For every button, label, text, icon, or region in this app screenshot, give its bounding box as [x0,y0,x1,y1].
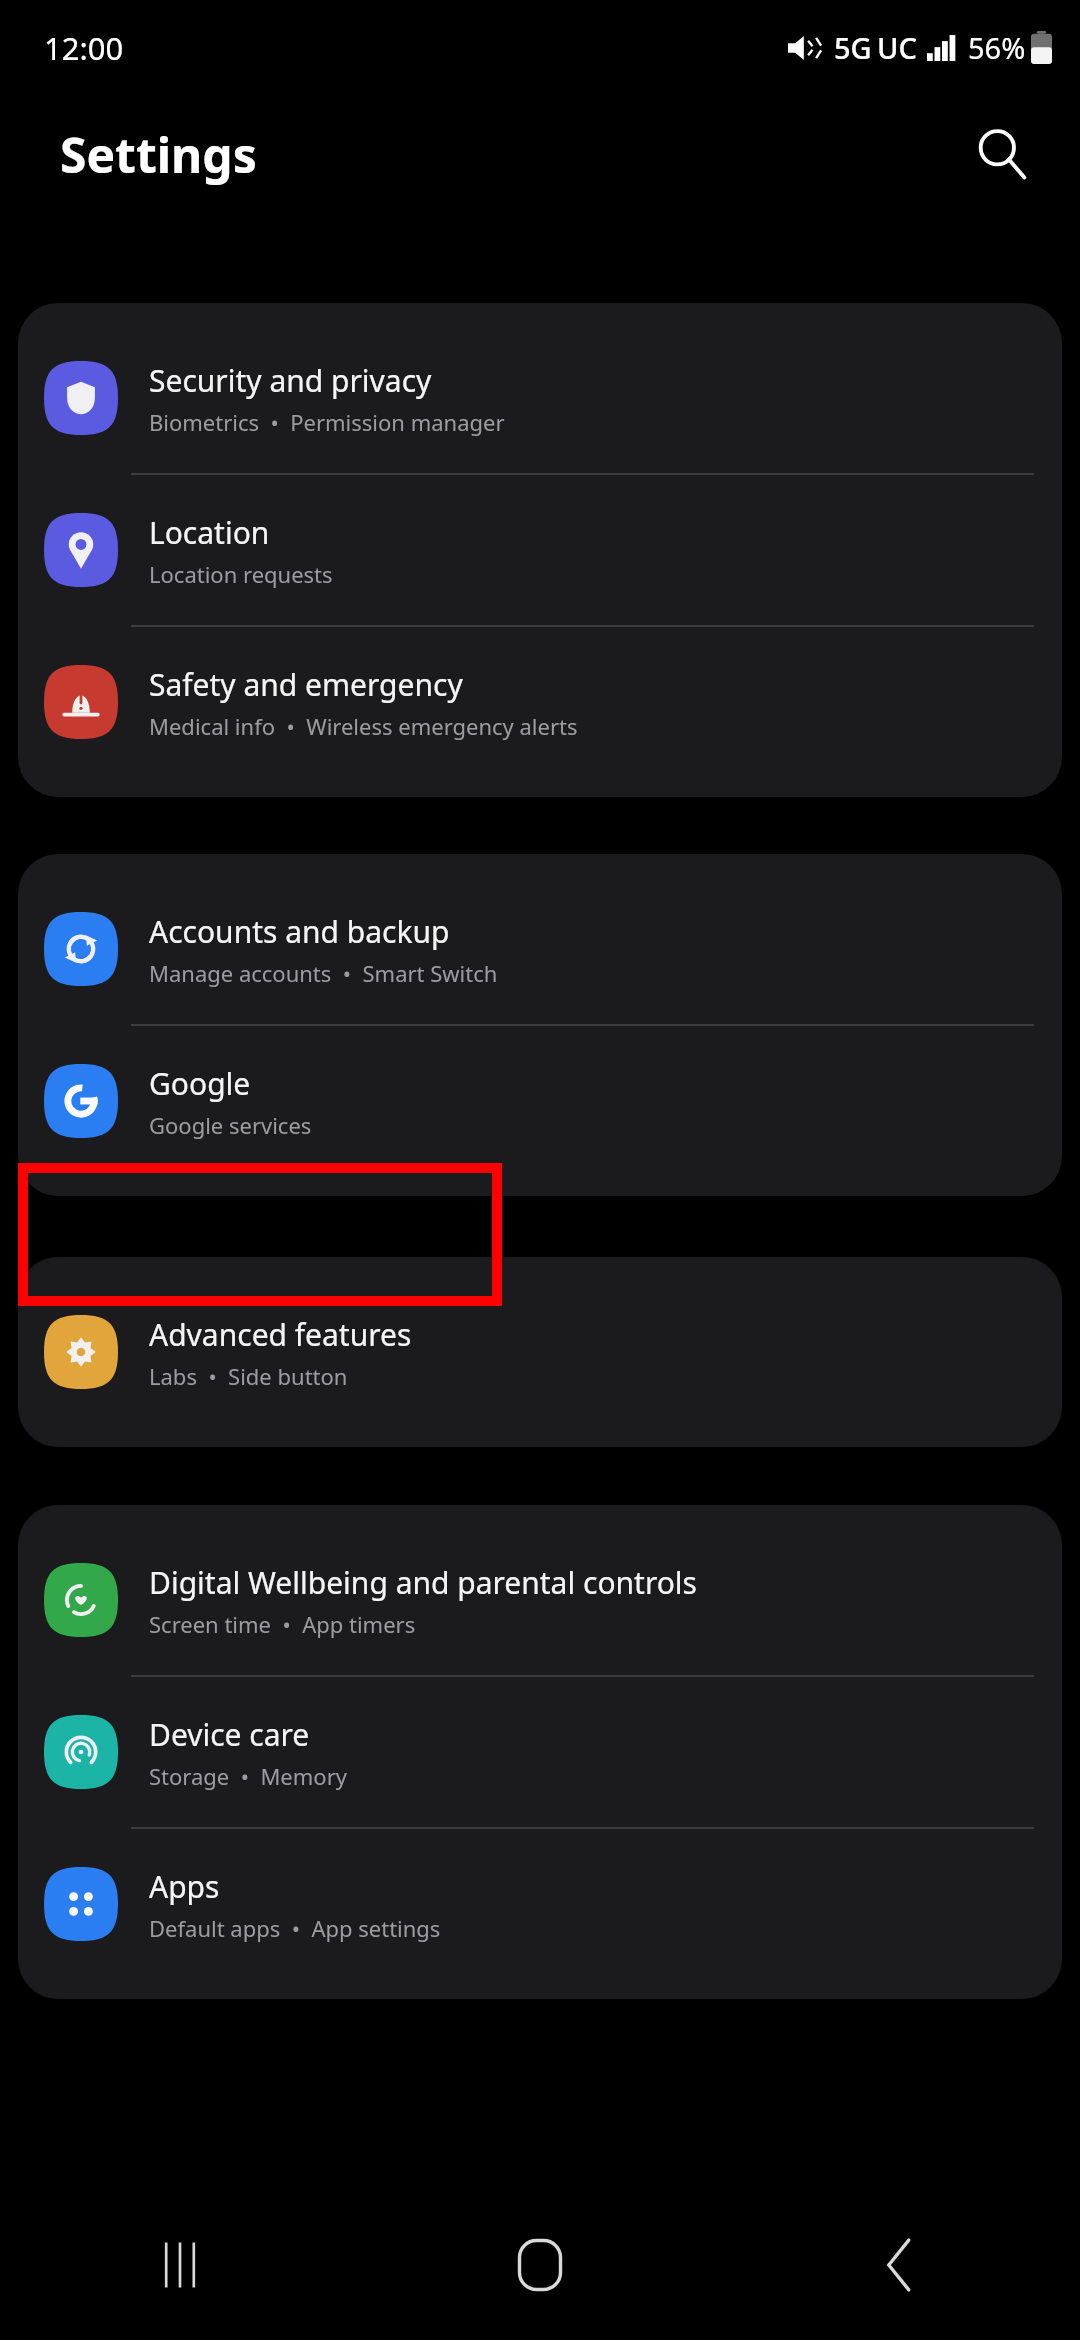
button[interactable]: Home [360,2190,720,2340]
staticText: 5G [834,28,872,67]
staticText: Settings [60,122,257,187]
staticText: Digital Wellbeing and parental controls [149,1562,697,1603]
staticText: Apps [149,1866,220,1907]
button[interactable]: Search [956,108,1048,200]
staticText: Security and privacy [149,360,432,401]
staticText: Storage • Memory [149,1761,347,1791]
button[interactable]: Google [18,1026,1062,1176]
staticText: Location requests [149,559,333,589]
button[interactable]: Apps [18,1829,1062,1979]
button[interactable]: Safety and emergency [18,627,1062,777]
staticText: Biometrics • Permission manager [149,407,505,437]
staticText: Advanced features [149,1314,412,1355]
staticText: Medical info • Wireless emergency alerts [149,711,578,741]
button[interactable]: Device care [18,1677,1062,1827]
button[interactable]: Digital Wellbeing and parental controls [18,1525,1062,1675]
staticText: Accounts and backup [149,911,450,952]
button[interactable]: Location [18,475,1062,625]
button[interactable]: Advanced features [18,1277,1062,1427]
button[interactable]: Security and privacy [18,323,1062,473]
staticText: Location [149,512,270,553]
staticText: Safety and emergency [149,664,463,705]
staticText: Google services [149,1110,312,1140]
button[interactable]: Back [720,2190,1080,2340]
button[interactable]: Recent apps [0,2190,360,2340]
staticText: 56% [968,28,1026,67]
button[interactable]: Accounts and backup [18,874,1062,1024]
staticText: UC [877,28,917,67]
staticText: Screen time • App timers [149,1609,416,1639]
staticText: Manage accounts • Smart Switch [149,958,498,988]
staticText: Labs • Side button [149,1361,348,1391]
staticText: 12:00 [44,27,124,69]
staticText: Device care [149,1714,310,1755]
staticText: Default apps • App settings [149,1913,441,1943]
staticText: Google [149,1063,251,1104]
